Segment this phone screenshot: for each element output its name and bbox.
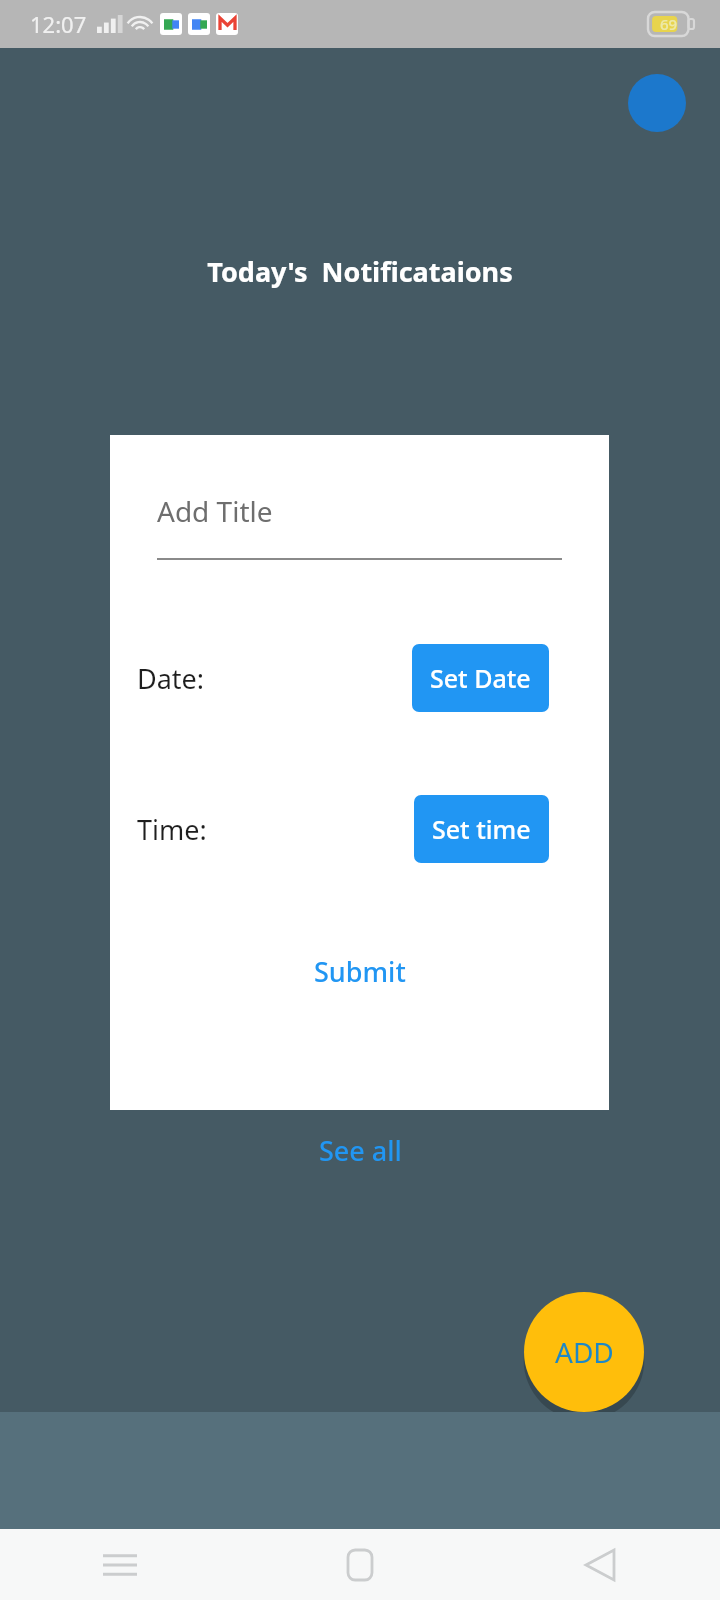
- staticText: 12:07: [30, 9, 87, 39]
- button[interactable]: Set time: [414, 795, 549, 863]
- staticText: See all: [319, 1132, 402, 1169]
- button[interactable]: ADD: [524, 1292, 644, 1412]
- staticText: Submit: [314, 953, 406, 990]
- staticText: Set time: [432, 812, 531, 846]
- staticText: Today's Notificataions: [0, 253, 720, 290]
- button[interactable]: Recent apps: [0, 1529, 240, 1600]
- staticText: Time:: [137, 811, 207, 848]
- staticText: ADD: [555, 1333, 614, 1371]
- staticText: Add Title: [157, 492, 273, 530]
- button[interactable]: Home: [240, 1529, 480, 1600]
- staticText: Date:: [137, 660, 205, 697]
- button[interactable]: Add Title: [157, 492, 562, 560]
- button[interactable]: Submit: [296, 947, 424, 996]
- button[interactable]: See all: [299, 1126, 422, 1175]
- button[interactable]: Back: [480, 1529, 720, 1600]
- staticText: 69: [660, 14, 678, 34]
- staticText: Set Date: [430, 661, 531, 695]
- button[interactable]: Profile: [628, 74, 686, 132]
- button[interactable]: Set Date: [412, 644, 549, 712]
